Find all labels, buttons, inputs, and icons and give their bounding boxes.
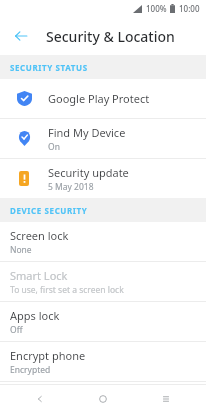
staticText: Find My Device: [48, 125, 126, 140]
staticText: Security & Location: [46, 27, 175, 46]
staticText: Apps lock: [10, 308, 60, 323]
staticText: Screen lock: [10, 228, 69, 243]
button[interactable]: Smart Lock: [0, 262, 206, 301]
staticText: SECURITY STATUS: [10, 62, 88, 73]
staticText: DEVICE SECURITY: [10, 205, 88, 216]
staticText: To use, first set a screen lock: [10, 284, 124, 296]
staticText: Google Play Protect: [48, 91, 150, 106]
button[interactable]: Encrypt phone: [0, 342, 206, 381]
button[interactable]: Back: [8, 23, 34, 49]
button[interactable]: Security update: [0, 159, 206, 198]
staticText: Smart Lock: [10, 268, 68, 283]
staticText: On: [48, 141, 60, 153]
staticText: None: [10, 244, 32, 256]
button[interactable]: Apps lock: [0, 302, 206, 341]
button[interactable]: Home: [90, 386, 116, 412]
staticText: 5 May 2018: [48, 181, 94, 193]
staticText: Encrypt phone: [10, 348, 86, 363]
staticText: Off: [10, 324, 23, 336]
button[interactable]: Google Play Protect: [0, 79, 206, 118]
button[interactable]: Screen lock: [0, 222, 206, 261]
button[interactable]: Find My Device: [0, 119, 206, 158]
button[interactable]: Back: [27, 386, 53, 412]
button[interactable]: Recent apps: [153, 386, 179, 412]
staticText: Encrypted: [10, 364, 51, 376]
staticText: Security update: [48, 165, 129, 180]
staticText: 100%: [146, 3, 167, 14]
staticText: 10:00: [179, 3, 200, 14]
